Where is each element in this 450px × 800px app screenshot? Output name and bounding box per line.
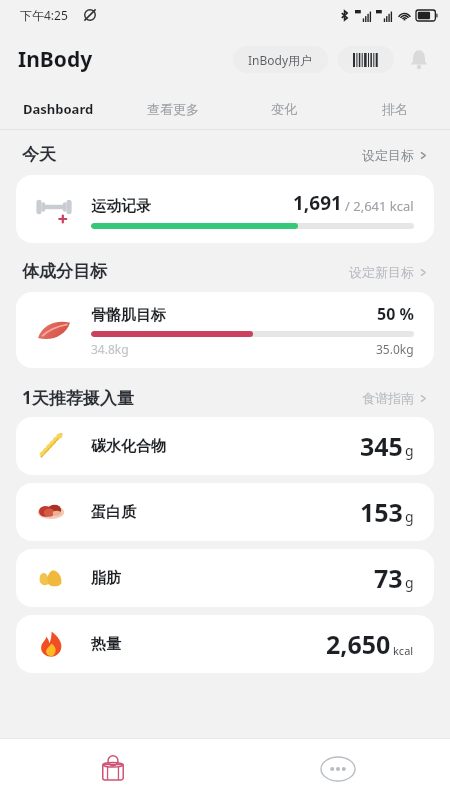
button[interactable]: 骨骼肌目标	[16, 292, 434, 368]
button[interactable]: Body composition	[0, 738, 225, 800]
staticText: 设定新目标	[349, 264, 414, 280]
staticText: 食谱指南	[362, 390, 414, 406]
button[interactable]: 食谱指南	[362, 390, 428, 406]
button[interactable]: 碳水化合物	[16, 417, 434, 475]
staticText: g	[405, 573, 414, 592]
staticText: / 2,641 kcal	[345, 197, 414, 215]
button[interactable]: Notifications	[402, 42, 436, 76]
staticText: 34.8kg	[91, 341, 129, 357]
staticText: 1天推荐摄入量	[22, 386, 134, 409]
button[interactable]: 设定目标	[362, 147, 428, 163]
staticText: Dashboard	[23, 100, 94, 118]
staticText: 1,691	[293, 190, 342, 216]
button[interactable]: 查看更多	[117, 88, 228, 130]
staticText: 体成分目标	[22, 261, 107, 282]
staticText: 设定目标	[362, 147, 414, 163]
button[interactable]: InBody用户	[233, 46, 328, 73]
staticText: 碳水化合物	[91, 437, 166, 456]
staticText: g	[405, 507, 414, 526]
button[interactable]: 脂肪	[16, 549, 434, 607]
staticText: 50 %	[377, 303, 414, 325]
staticText: InBody	[18, 45, 93, 74]
staticText: InBody用户	[248, 52, 313, 68]
button[interactable]: 设定新目标	[349, 264, 428, 280]
button[interactable]: 蛋白质	[16, 483, 434, 541]
staticText: 今天	[22, 144, 56, 165]
staticText: 下午4:25	[20, 7, 68, 23]
button[interactable]: 变化	[228, 88, 339, 130]
staticText: g	[405, 441, 414, 460]
staticText: 热量	[91, 635, 121, 654]
staticText: 2,650	[326, 627, 391, 661]
staticText: kcal	[393, 643, 414, 658]
button[interactable]: 热量	[16, 615, 434, 673]
button[interactable]: Dashboard	[0, 88, 117, 130]
staticText: 73	[374, 561, 403, 595]
staticText: 345	[360, 429, 403, 463]
staticText: 排名	[382, 101, 408, 117]
staticText: 运动记录	[91, 197, 151, 216]
staticText: 变化	[271, 101, 297, 117]
button[interactable]: More options	[225, 738, 450, 800]
staticText: 骨骼肌目标	[91, 306, 166, 325]
button[interactable]: Scan barcode	[338, 46, 394, 73]
staticText: 35.0kg	[376, 341, 414, 357]
staticText: 153	[360, 495, 403, 529]
staticText: 脂肪	[91, 569, 121, 588]
staticText: 蛋白质	[91, 503, 136, 522]
button[interactable]: 运动记录	[16, 175, 434, 243]
staticText: 查看更多	[147, 101, 199, 117]
button[interactable]: 排名	[339, 88, 450, 130]
